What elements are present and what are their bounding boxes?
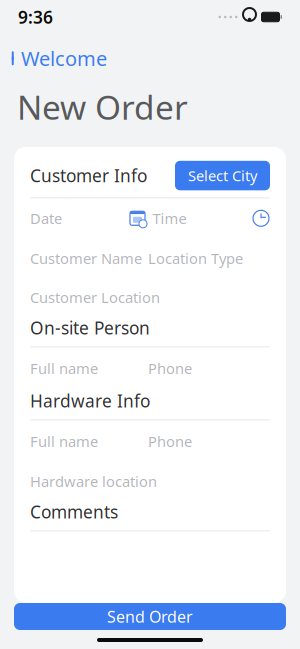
- button[interactable]: Welcome: [0, 41, 107, 76]
- staticText: Phone: [148, 359, 192, 378]
- staticText: On-site Person: [30, 316, 150, 339]
- button[interactable]: Select City: [175, 161, 270, 190]
- staticText: Location Type: [148, 249, 243, 268]
- staticText: Full name: [30, 359, 98, 378]
- staticText: Comments: [30, 500, 118, 523]
- staticText: Full name: [30, 432, 98, 451]
- staticText: Customer Location: [30, 288, 160, 307]
- staticText: Date: [30, 209, 62, 228]
- staticText: 9:36: [18, 5, 53, 28]
- button[interactable]: Send Order: [14, 603, 286, 630]
- staticText: Time: [152, 209, 186, 228]
- staticText: Select City: [188, 166, 257, 185]
- staticText: Customer Name: [30, 249, 142, 268]
- staticText: Hardware Info: [30, 389, 150, 412]
- staticText: Customer Info: [30, 164, 147, 187]
- staticText: Send Order: [107, 606, 193, 627]
- staticText: New Order: [17, 85, 188, 129]
- staticText: Welcome: [21, 45, 107, 72]
- staticText: Phone: [148, 432, 192, 451]
- staticText: Hardware location: [30, 472, 157, 491]
